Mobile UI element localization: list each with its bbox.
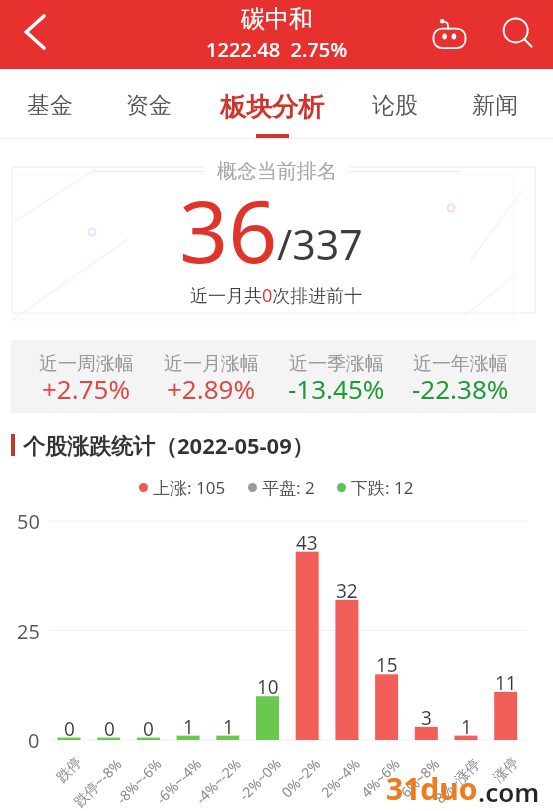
staticText: 个股涨跌统计（2022-05-09） bbox=[23, 430, 314, 460]
staticText: 0 bbox=[104, 716, 115, 742]
staticText: -22.38% bbox=[412, 371, 509, 406]
button[interactable]: 基金 bbox=[22, 69, 77, 139]
staticText: .com bbox=[478, 774, 540, 809]
staticText: 31duo bbox=[386, 768, 478, 809]
staticText: 上涨: 105 bbox=[153, 476, 226, 499]
button[interactable]: 近一周涨幅 bbox=[16, 340, 156, 413]
button[interactable]: 资金 bbox=[121, 69, 176, 139]
staticText: 新闻 bbox=[472, 91, 518, 120]
staticText: 下跌: 12 bbox=[351, 476, 414, 499]
staticText: 50 bbox=[17, 508, 40, 535]
staticText: 资金 bbox=[126, 91, 172, 120]
staticText: -13.45% bbox=[288, 371, 385, 406]
staticText: 11 bbox=[495, 670, 517, 696]
staticText: +2.89% bbox=[167, 371, 256, 406]
staticText: +2.75% bbox=[42, 371, 131, 406]
staticText: 近一月涨幅 bbox=[164, 352, 259, 376]
staticText: 32 bbox=[336, 578, 358, 604]
staticText: 概念当前排名 bbox=[217, 159, 337, 184]
staticText: 平盘: 2 bbox=[262, 476, 315, 499]
staticText: 1222.48 2.75% bbox=[206, 36, 348, 63]
staticText: 近一年涨幅 bbox=[413, 352, 508, 376]
staticText: 1 bbox=[461, 714, 472, 740]
button[interactable]: 新闻 bbox=[467, 69, 522, 139]
staticText: 10 bbox=[257, 674, 279, 700]
staticText: 1 bbox=[183, 714, 194, 740]
staticText: 近一季涨幅 bbox=[289, 352, 384, 376]
staticText: 25 bbox=[17, 618, 40, 645]
staticText: 0 bbox=[64, 716, 75, 742]
staticText: 板块分析 bbox=[220, 91, 324, 124]
button[interactable]: 近一季涨幅 bbox=[266, 340, 406, 413]
staticText: 论股 bbox=[372, 91, 418, 120]
staticText: 碳中和 bbox=[241, 4, 313, 34]
button[interactable]: 近一月涨幅 bbox=[141, 340, 281, 413]
button[interactable]: Search bbox=[490, 0, 548, 69]
button[interactable]: Assistant bbox=[424, 0, 476, 69]
button[interactable]: 论股 bbox=[367, 69, 422, 139]
staticText: 0 bbox=[28, 727, 40, 754]
staticText: 近一周涨幅 bbox=[39, 352, 134, 376]
button[interactable]: Back bbox=[4, 0, 66, 69]
button[interactable]: 近一年涨幅 bbox=[390, 340, 530, 413]
staticText: 15 bbox=[376, 652, 398, 678]
staticText: 3 bbox=[421, 705, 432, 731]
staticText: 基金 bbox=[27, 91, 73, 120]
staticText: 36 bbox=[179, 171, 278, 288]
staticText: 近一月共0次排进前十 bbox=[190, 283, 363, 308]
staticText: 43 bbox=[296, 530, 318, 556]
button[interactable]: 板块分析 bbox=[213, 69, 331, 139]
staticText: 0 bbox=[143, 716, 154, 742]
staticText: 1 bbox=[223, 714, 234, 740]
staticText: /337 bbox=[277, 216, 363, 272]
